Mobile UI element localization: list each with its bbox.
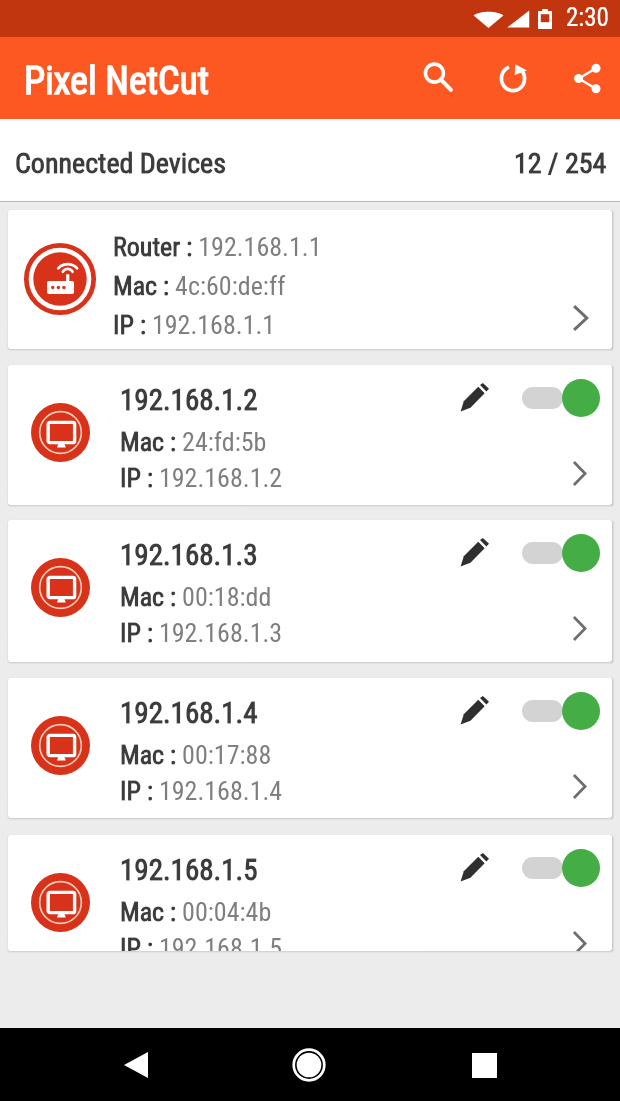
button[interactable]: Router : 192.168.1.1 xyxy=(8,210,612,349)
staticText: Mac : 24:fd:5b xyxy=(120,427,267,457)
staticText: 192.168.1.5 xyxy=(120,853,258,887)
other: Details xyxy=(572,616,588,641)
button[interactable]: Back xyxy=(112,1041,160,1089)
staticText: IP : 192.168.1.1 xyxy=(113,310,276,340)
other: Details xyxy=(572,461,588,486)
other: Details xyxy=(572,305,590,331)
button[interactable]: 192.168.1.5 xyxy=(8,835,612,951)
staticText: Mac : 00:04:4b xyxy=(120,897,272,927)
button[interactable]: Edit name xyxy=(453,531,495,573)
button[interactable]: 192.168.1.2 xyxy=(8,365,612,505)
button[interactable]: 192.168.1.3 xyxy=(8,520,612,662)
staticText: IP : 192.168.1.4 xyxy=(120,776,283,806)
staticText: Mac : 4c:60:de:ff xyxy=(113,271,286,301)
other: Details xyxy=(572,931,588,951)
staticText: IP : 192.168.1.5 xyxy=(120,933,283,951)
staticText: 12 / 254 xyxy=(514,147,607,180)
staticText: 192.168.1.2 xyxy=(120,383,258,417)
button[interactable]: Toggle device xyxy=(508,374,602,422)
staticText: 192.168.1.4 xyxy=(120,696,258,730)
staticText: Mac : 00:18:dd xyxy=(120,582,272,612)
button[interactable]: Toggle device xyxy=(508,844,602,892)
staticText: Router : 192.168.1.1 xyxy=(113,232,322,262)
button[interactable]: Toggle device xyxy=(508,529,602,577)
staticText: 192.168.1.3 xyxy=(120,538,258,572)
staticText: IP : 192.168.1.3 xyxy=(120,618,283,648)
button[interactable]: 192.168.1.4 xyxy=(8,678,612,818)
staticText: Mac : 00:17:88 xyxy=(120,740,272,770)
staticText: Connected Devices xyxy=(15,147,226,180)
staticText: IP : 192.168.1.2 xyxy=(120,463,283,493)
button[interactable]: Refresh xyxy=(487,52,539,104)
button[interactable]: Edit name xyxy=(453,376,495,418)
button[interactable]: Toggle device xyxy=(508,687,602,735)
staticText: 2:30 xyxy=(566,3,609,32)
other: Details xyxy=(572,774,588,799)
button[interactable]: Recent apps xyxy=(460,1041,508,1089)
button[interactable]: Edit name xyxy=(453,689,495,731)
button[interactable]: Search xyxy=(417,52,469,104)
staticText: Pixel NetCut xyxy=(24,59,210,104)
button[interactable]: Home xyxy=(285,1041,333,1089)
button[interactable]: Share xyxy=(561,52,613,104)
button[interactable]: Edit name xyxy=(453,846,495,888)
